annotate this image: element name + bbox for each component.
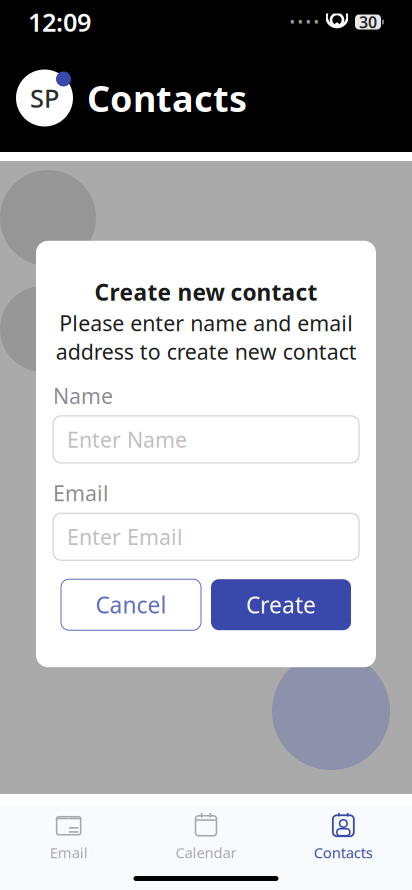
staticText: Please enter name and email address to c… — [55, 309, 356, 366]
button[interactable]: Enter Email — [53, 513, 359, 560]
staticText: Name — [53, 382, 113, 410]
staticText: Calendar — [175, 843, 236, 862]
staticText: Cancel — [95, 590, 166, 620]
button[interactable]: Cancel — [61, 579, 201, 630]
button[interactable]: Contacts — [275, 815, 412, 861]
staticText: Create new contact — [94, 277, 317, 307]
staticText: Email — [50, 843, 88, 862]
staticText: 12:09 — [28, 5, 91, 39]
staticText: • • • • — [290, 14, 319, 30]
staticText: Email — [53, 479, 109, 507]
button[interactable]: Create — [211, 579, 351, 630]
staticText: Enter Email — [67, 522, 183, 551]
staticText: Enter Name — [67, 425, 187, 453]
staticText: 30 — [359, 11, 377, 33]
staticText: Contacts — [314, 843, 373, 862]
button[interactable]: Email — [0, 815, 137, 861]
staticText: Contacts — [87, 74, 247, 122]
button[interactable]: Calendar — [137, 815, 275, 861]
button[interactable]: Profile — [16, 69, 73, 126]
staticText: Create — [246, 590, 316, 620]
staticText: SP — [30, 81, 59, 115]
button[interactable]: Enter Name — [53, 416, 359, 463]
